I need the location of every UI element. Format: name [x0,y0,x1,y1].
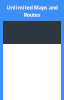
staticText: Unlimited Maps and [6,4,57,11]
staticText: Routes [23,11,40,18]
